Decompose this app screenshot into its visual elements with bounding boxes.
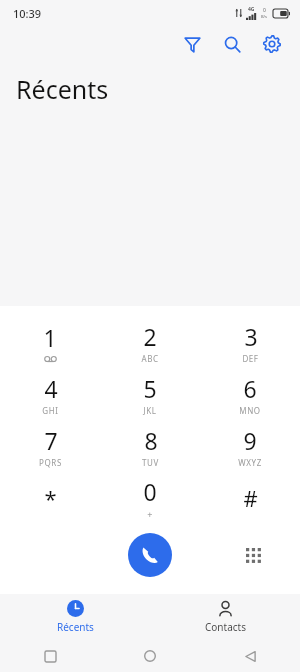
button[interactable]: 7 (0, 420, 100, 472)
button[interactable]: 0 (100, 472, 200, 524)
button[interactable]: 8 (100, 420, 200, 472)
staticText: 4 (44, 373, 58, 404)
button[interactable]: 1 (0, 316, 100, 368)
staticText: 0 (263, 7, 266, 14)
staticText: Récents (57, 620, 94, 634)
staticText: 1 (43, 322, 57, 353)
staticText: Récents (16, 72, 109, 106)
button[interactable]: 4 (0, 368, 100, 420)
staticText: + (147, 508, 153, 520)
staticText: MNO (239, 405, 261, 416)
staticText: 8 (144, 425, 158, 456)
staticText: WXYZ (238, 457, 262, 468)
button[interactable]: Call (128, 533, 172, 577)
staticText: TUV (142, 457, 159, 468)
staticText: 6 (243, 373, 257, 404)
button[interactable]: 3 (200, 316, 300, 368)
staticText: 2 (143, 321, 157, 352)
staticText: ABC (141, 353, 159, 364)
button[interactable]: 2 (100, 316, 200, 368)
button[interactable]: Contacts (150, 594, 300, 640)
staticText: 4G (248, 6, 255, 13)
button[interactable]: Keypad (236, 538, 270, 572)
button[interactable]: Settings (252, 26, 292, 62)
staticText: JKL (143, 405, 157, 416)
staticText: 5 (143, 373, 157, 404)
button[interactable]: * (0, 472, 100, 524)
button[interactable]: Filter (172, 26, 212, 62)
staticText: B/s (261, 14, 268, 19)
button[interactable]: 6 (200, 368, 300, 420)
staticText: 7 (44, 425, 58, 456)
staticText: 3 (244, 321, 258, 352)
staticText: Contacts (205, 620, 246, 634)
button[interactable]: 9 (200, 420, 300, 472)
button[interactable]: Home (100, 640, 200, 672)
staticText: # (243, 483, 258, 513)
button[interactable]: Récents (0, 594, 150, 640)
staticText: GHI (42, 405, 59, 416)
button[interactable]: # (200, 472, 300, 524)
staticText: * (44, 483, 57, 513)
staticText: DEF (242, 353, 259, 364)
button[interactable]: Back (200, 640, 300, 672)
button[interactable]: Search (212, 26, 252, 62)
staticText: PQRS (39, 457, 62, 468)
staticText: 10:39 (13, 6, 42, 21)
button[interactable]: Recent apps (0, 640, 100, 672)
staticText: 9 (243, 425, 257, 456)
button[interactable]: 5 (100, 368, 200, 420)
staticText: 0 (143, 476, 157, 507)
